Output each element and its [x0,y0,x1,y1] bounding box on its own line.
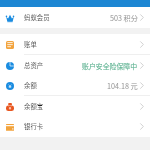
button[interactable]: 银行卡 [0,116,150,137]
button[interactable]: 余额宝 [0,96,150,117]
staticText: 总资产 [24,61,44,70]
button[interactable]: 余额 [0,75,150,96]
staticText: 账单 [24,40,37,49]
staticText: 银行卡 [24,122,44,131]
button[interactable]: 账单 [0,34,150,55]
staticText: 余额宝 [24,102,44,111]
staticText: 账户安全险保障中 [82,61,138,71]
button[interactable]: 总资产 [0,55,150,76]
button[interactable]: 蚂蚁会员 [0,7,150,28]
staticText: 余额 [24,81,37,90]
staticText: 503 积分 [110,13,138,23]
staticText: 104.18 元 [107,81,138,91]
staticText: 蚂蚁会员 [24,13,50,22]
